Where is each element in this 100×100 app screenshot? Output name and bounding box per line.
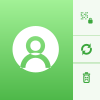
button[interactable]: Delete [73,63,100,100]
button[interactable]: Refresh [73,36,100,63]
button[interactable]: Secure QR code [73,0,100,35]
